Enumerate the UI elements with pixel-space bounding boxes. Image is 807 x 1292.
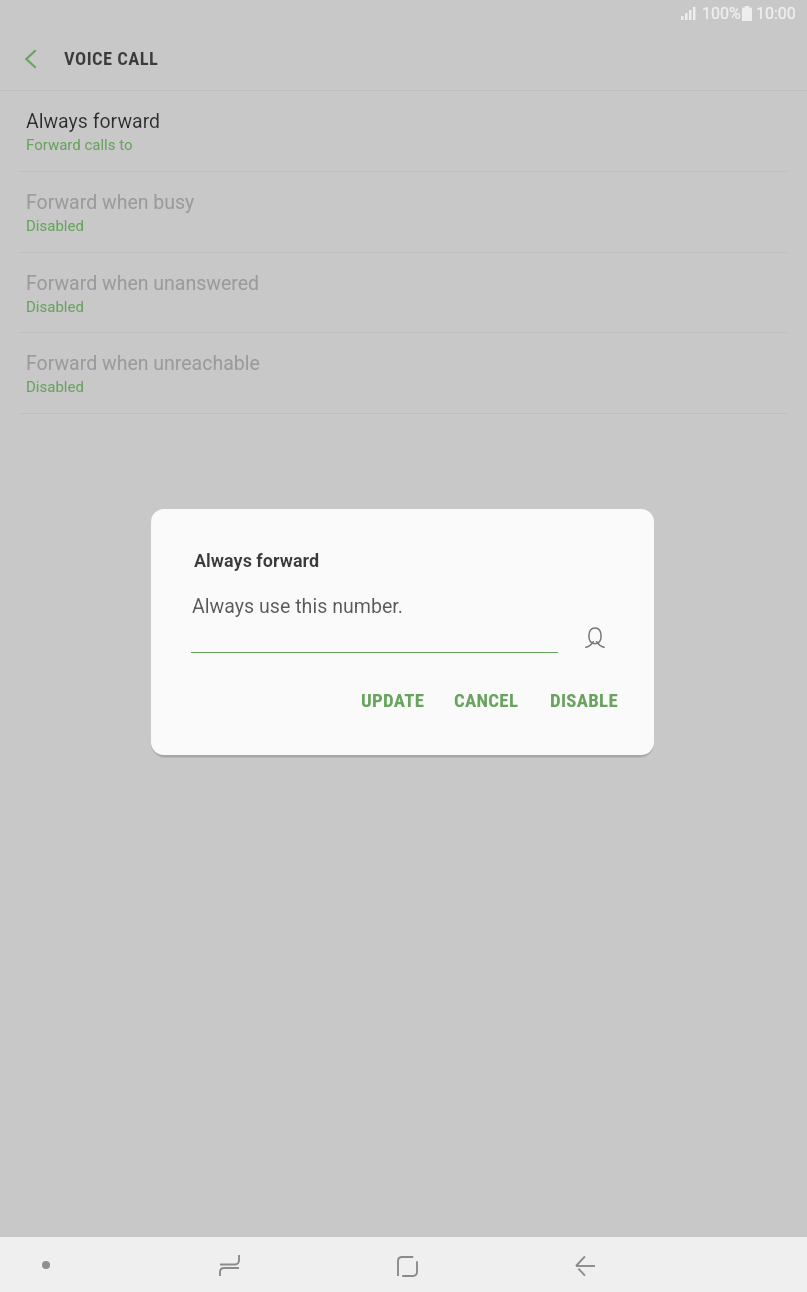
button[interactable]: Back	[549, 1238, 622, 1292]
staticText: DISABLE	[550, 690, 618, 712]
staticText: Always forward	[26, 110, 161, 133]
staticText: Forward when busy	[26, 191, 195, 214]
staticText: Disabled	[26, 298, 84, 316]
staticText: Always forward	[194, 550, 320, 571]
button[interactable]: DISABLE	[537, 680, 631, 722]
staticText: Always use this number.	[192, 595, 403, 618]
staticText: VOICE CALL	[64, 48, 159, 70]
staticText: Forward calls to	[26, 136, 133, 154]
button[interactable]: Show navigation buttons	[19, 1237, 73, 1292]
button[interactable]: UPDATE	[348, 680, 438, 722]
button[interactable]: Forward when unreachable	[0, 332, 807, 413]
button[interactable]: Forward when busy	[0, 171, 807, 252]
button[interactable]: CANCEL	[441, 680, 532, 722]
button[interactable]: Home	[371, 1239, 444, 1292]
staticText: 100%	[702, 4, 741, 23]
button[interactable]: Select contact	[569, 611, 621, 663]
button[interactable]: Always forward	[0, 90, 807, 171]
staticText: Forward when unreachable	[26, 352, 260, 375]
button[interactable]: Recents	[193, 1238, 266, 1292]
button[interactable]: Forward when unanswered	[0, 252, 807, 333]
button[interactable]: Navigate up	[8, 36, 54, 82]
staticText: Disabled	[26, 217, 84, 235]
staticText: 10:00	[756, 4, 796, 23]
staticText: Forward when unanswered	[26, 272, 260, 295]
staticText: CANCEL	[454, 690, 519, 712]
staticText: UPDATE	[361, 690, 425, 712]
staticText: Disabled	[26, 378, 84, 396]
